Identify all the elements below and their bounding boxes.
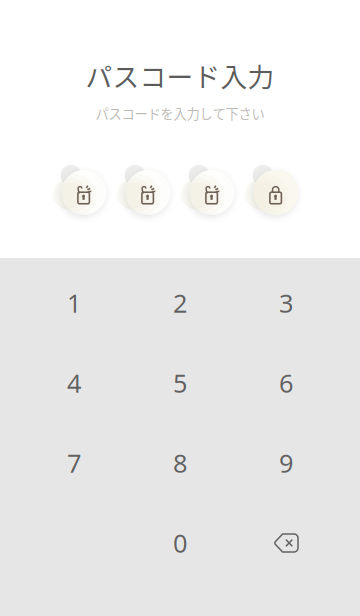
button[interactable]: 7 — [21, 423, 127, 503]
button[interactable]: 9 — [233, 423, 339, 503]
staticText: パスコード入力 — [85, 56, 274, 95]
staticText: 7 — [67, 446, 81, 480]
button[interactable]: 3 — [233, 263, 339, 343]
staticText: 0 — [173, 526, 187, 560]
button[interactable]: Delete — [233, 503, 339, 583]
button[interactable]: 6 — [233, 343, 339, 423]
staticText: 4 — [67, 366, 81, 400]
button[interactable]: 4 — [21, 343, 127, 423]
staticText: 8 — [173, 446, 187, 480]
staticText: 6 — [279, 366, 293, 400]
staticText: 1 — [67, 286, 81, 320]
button[interactable]: 8 — [127, 423, 233, 503]
staticText: 5 — [173, 366, 187, 400]
staticText: 2 — [173, 286, 187, 320]
staticText: 3 — [279, 286, 293, 320]
button[interactable]: 0 — [127, 503, 233, 583]
button[interactable]: 1 — [21, 263, 127, 343]
button[interactable]: 2 — [127, 263, 233, 343]
button[interactable]: 5 — [127, 343, 233, 423]
staticText: パスコードを入力して下さい — [95, 104, 264, 123]
staticText: 9 — [279, 446, 293, 480]
